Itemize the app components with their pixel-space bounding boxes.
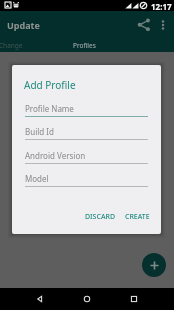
staticText: Android Version xyxy=(25,150,86,161)
staticText: Build Id xyxy=(25,126,54,137)
staticText: CREATE xyxy=(125,212,150,222)
button[interactable]: Profile Name xyxy=(25,96,148,117)
button[interactable]: Home xyxy=(79,291,95,307)
staticText: Profiles xyxy=(73,41,96,50)
staticText: Model xyxy=(25,173,49,184)
staticText: Update xyxy=(7,19,40,31)
button[interactable]: Back xyxy=(32,291,48,307)
button[interactable]: More options xyxy=(154,16,172,34)
button[interactable]: Build Id xyxy=(25,119,148,140)
button[interactable]: Add profile xyxy=(142,253,166,277)
button[interactable]: Profiles xyxy=(69,38,100,52)
staticText: Change xyxy=(0,41,23,50)
button[interactable]: CREATE xyxy=(121,206,154,228)
button[interactable]: Model xyxy=(25,166,148,187)
button[interactable]: DISCARD xyxy=(76,206,121,228)
button[interactable]: Android Version xyxy=(25,143,148,164)
button[interactable]: Change xyxy=(0,38,23,52)
button[interactable]: Recents xyxy=(126,291,142,307)
button[interactable]: Share xyxy=(135,16,153,34)
staticText: Add Profile xyxy=(24,78,76,92)
staticText: 12:17 xyxy=(151,1,172,12)
staticText: DISCARD xyxy=(85,212,116,222)
staticText: Profile Name xyxy=(25,103,74,114)
